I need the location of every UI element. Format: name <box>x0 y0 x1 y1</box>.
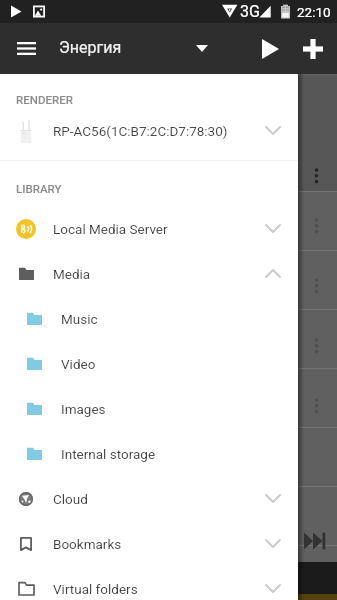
staticText: Bookmarks <box>53 536 122 552</box>
button[interactable]: Change playlist <box>183 23 221 74</box>
staticText: LIBRARY <box>16 182 62 195</box>
staticText: Video <box>61 356 96 372</box>
staticText: RENDERER <box>16 93 73 106</box>
staticText: RP-AC56(1C:B7:2C:D7:78:30) <box>53 123 228 139</box>
staticText: 3G <box>240 2 260 21</box>
button[interactable]: Add <box>291 23 335 74</box>
button[interactable]: Virtual folders <box>0 566 298 600</box>
staticText: Local Media Server <box>53 221 168 237</box>
button[interactable]: Cloud <box>0 476 298 521</box>
staticText: Media <box>53 266 91 282</box>
button[interactable]: Media <box>0 251 298 296</box>
staticText: Music <box>61 311 98 327</box>
staticText: Cloud <box>53 491 88 507</box>
button[interactable]: Internal storage <box>0 431 298 476</box>
button[interactable]: RP-AC56(1C:B7:2C:D7:78:30) <box>0 108 298 153</box>
button[interactable]: Local Media Server <box>0 206 298 251</box>
button[interactable]: Play <box>247 23 293 74</box>
button[interactable]: Bookmarks <box>0 521 298 566</box>
staticText: Virtual folders <box>53 581 138 597</box>
button[interactable]: Music <box>0 296 298 341</box>
button[interactable]: Video <box>0 341 298 386</box>
button[interactable]: Images <box>0 386 298 431</box>
staticText: 22:10 <box>297 4 331 20</box>
staticText: Internal storage <box>61 446 156 462</box>
staticText: Images <box>61 401 106 417</box>
staticText: Энергия <box>59 38 122 57</box>
button[interactable]: Open navigation drawer <box>4 23 48 74</box>
